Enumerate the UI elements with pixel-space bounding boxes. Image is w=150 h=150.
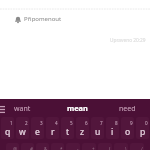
- staticText: 9: [130, 120, 133, 126]
- staticText: z: [80, 126, 85, 138]
- button[interactable]: ): [114, 143, 128, 150]
- staticText: 7: [100, 120, 103, 126]
- staticText: 5: [70, 120, 73, 126]
- staticText: /: [141, 146, 143, 150]
- button[interactable]: need: [107, 100, 147, 117]
- button[interactable]: *: [51, 143, 64, 150]
- button[interactable]: 8: [106, 117, 119, 139]
- button[interactable]: 9: [121, 117, 134, 139]
- staticText: e: [35, 126, 40, 138]
- staticText: 3: [40, 120, 43, 126]
- button[interactable]: 1: [1, 117, 14, 139]
- button[interactable]: /: [130, 143, 144, 150]
- staticText: -: [77, 146, 79, 150]
- button[interactable]: 0: [136, 117, 149, 139]
- staticText: Připomenout: [24, 15, 62, 23]
- button[interactable]: Remind: [0, 12, 68, 26]
- button[interactable]: 7: [91, 117, 104, 139]
- staticText: 1: [10, 120, 13, 126]
- button[interactable]: mean: [57, 99, 97, 116]
- staticText: u: [95, 126, 101, 138]
- staticText: Upraveno 20:29: [110, 37, 146, 44]
- button[interactable]: 4: [46, 117, 59, 139]
- button[interactable]: -: [66, 143, 80, 150]
- button[interactable]: (: [98, 143, 112, 150]
- staticText: w: [19, 126, 26, 138]
- staticText: 6: [85, 120, 88, 126]
- staticText: @: [13, 146, 18, 150]
- staticText: mean: [67, 103, 88, 113]
- button[interactable]: 2: [16, 117, 29, 139]
- button[interactable]: &: [36, 143, 49, 150]
- button[interactable]: 5: [61, 117, 74, 139]
- button[interactable]: 3: [31, 117, 44, 139]
- staticText: (: [109, 146, 111, 150]
- staticText: t: [66, 126, 70, 138]
- button[interactable]: Keyboard menu: [0, 103, 11, 116]
- staticText: &: [44, 146, 48, 150]
- staticText: #: [30, 146, 33, 150]
- staticText: *: [60, 146, 63, 150]
- button[interactable]: @: [6, 143, 19, 150]
- staticText: o: [125, 126, 131, 138]
- staticText: want: [14, 104, 31, 114]
- button[interactable]: 6: [76, 117, 89, 139]
- staticText: need: [119, 104, 136, 114]
- staticText: ): [125, 146, 127, 150]
- staticText: +: [92, 146, 95, 150]
- other: Remind: [15, 16, 21, 23]
- button[interactable]: #: [21, 143, 34, 150]
- staticText: 8: [115, 120, 118, 126]
- staticText: r: [51, 126, 55, 138]
- staticText: q: [5, 126, 11, 138]
- staticText: 2: [25, 120, 28, 126]
- staticText: p: [140, 126, 146, 138]
- staticText: 4: [55, 120, 58, 126]
- button[interactable]: +: [82, 143, 96, 150]
- staticText: i: [111, 126, 114, 138]
- button[interactable]: want: [2, 100, 42, 117]
- staticText: 0: [145, 120, 148, 126]
